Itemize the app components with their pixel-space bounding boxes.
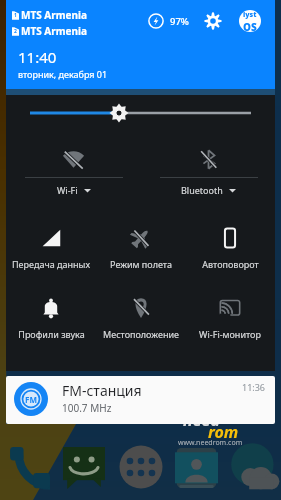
staticText: Wi-Fi xyxy=(57,184,78,196)
staticText: Wi-Fi-монитор xyxy=(199,328,261,340)
staticText: FM-станция xyxy=(62,381,142,400)
staticText: MTS Armenia xyxy=(21,24,87,38)
staticText: Местоположение xyxy=(103,328,179,340)
button[interactable]: Режим полета xyxy=(96,216,186,276)
staticText: 97% xyxy=(170,15,189,28)
staticText: 2 xyxy=(14,28,17,35)
button[interactable]: Bluetooth xyxy=(141,137,276,201)
button[interactable]: FM xyxy=(6,376,275,424)
staticText: lyst xyxy=(243,10,257,20)
button[interactable]: Wi-Fi-монитор xyxy=(185,286,275,346)
button[interactable]: Местоположение xyxy=(96,286,186,346)
button[interactable]: Профили звука xyxy=(6,286,96,346)
staticText: MTS Armenia xyxy=(21,8,87,22)
staticText: Bluetooth xyxy=(181,184,223,196)
staticText: Автоповорот xyxy=(202,258,259,270)
staticText: need xyxy=(183,409,220,431)
staticText: 11:36 xyxy=(242,381,266,393)
staticText: FM xyxy=(25,394,37,405)
staticText: OS xyxy=(243,20,257,32)
button[interactable]: Wi-Fi xyxy=(6,137,141,201)
button[interactable]: Settings xyxy=(204,12,222,30)
staticText: вторник, декабря 01 xyxy=(18,68,108,80)
staticText: www.needrom.com xyxy=(178,438,243,448)
staticText: Передача данных xyxy=(12,258,90,270)
staticText: Профили звука xyxy=(18,328,85,340)
staticText: Режим полета xyxy=(110,258,172,270)
staticText: 100.7 MHz xyxy=(62,401,112,415)
button[interactable]: Автоповорот xyxy=(185,216,275,276)
button[interactable]: Передача данных xyxy=(6,216,96,276)
staticText: 1 xyxy=(14,12,17,19)
staticText: 11:40 xyxy=(18,47,57,67)
staticText: rom xyxy=(208,421,239,443)
button[interactable]: User profile xyxy=(239,10,261,32)
